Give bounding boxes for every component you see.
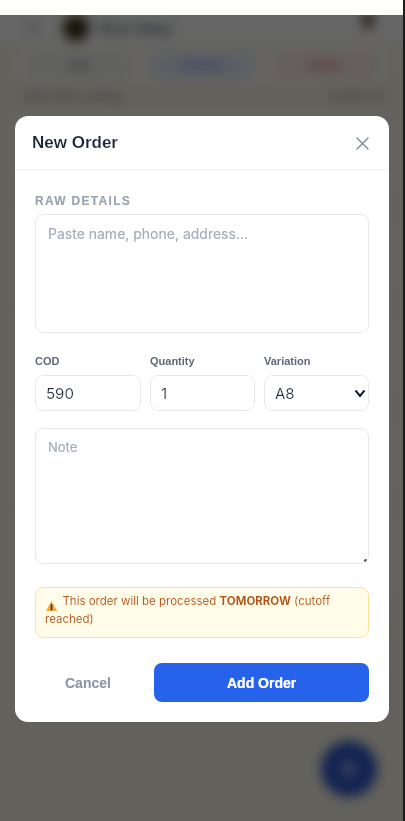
button[interactable]: A8 <box>264 375 369 411</box>
button[interactable]: Add Order <box>154 663 369 702</box>
staticText: A8 <box>275 384 295 402</box>
staticText: Rose Valley <box>100 21 173 36</box>
staticText: Paste name, phone, address... <box>48 225 248 242</box>
staticText: COD <box>35 355 60 367</box>
staticText: Note <box>48 439 78 455</box>
button[interactable]: Cancel <box>35 663 140 702</box>
button[interactable]: 1 <box>150 375 255 411</box>
staticText: Variation <box>264 355 311 367</box>
staticText: Cancel <box>65 675 111 691</box>
staticText: This order will be processed TOMORROW (c… <box>45 594 358 626</box>
staticText: Add Order <box>227 675 297 691</box>
staticText: 1 <box>161 384 168 402</box>
staticText: Quantity <box>150 355 195 367</box>
button[interactable]: Paste name, phone, address... <box>35 214 369 333</box>
button[interactable]: Note <box>35 428 369 564</box>
staticText: RAW DETAILS <box>35 194 132 207</box>
button[interactable]: 590 <box>35 375 141 411</box>
staticText: 590 <box>46 384 74 402</box>
staticText: New Order <box>32 133 118 152</box>
button[interactable]: Close <box>347 128 377 158</box>
